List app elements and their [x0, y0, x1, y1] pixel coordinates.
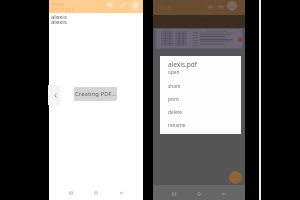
button[interactable]: Edit — [118, 1, 126, 9]
staticText: alexis — [51, 18, 67, 26]
button[interactable]: Previous page — [48, 85, 60, 105]
button[interactable]: Add — [229, 171, 242, 184]
staticText: alexis.pdf — [51, 6, 74, 13]
staticText: Creating PDF... — [75, 90, 117, 98]
button[interactable]: Recents — [67, 189, 75, 197]
staticText: share — [168, 83, 181, 90]
staticText: open — [168, 69, 180, 76]
button[interactable]: Share — [205, 2, 214, 11]
button[interactable]: Recents — [170, 190, 178, 198]
button[interactable]: Home — [92, 189, 100, 197]
button[interactable]: Home — [195, 190, 203, 198]
staticText: rename — [168, 122, 186, 129]
button[interactable]: rename — [160, 119, 241, 131]
button[interactable]: Account — [227, 1, 237, 11]
staticText: alexis — [51, 13, 67, 21]
button[interactable]: Edit — [216, 2, 225, 11]
button[interactable]: Account — [131, 1, 140, 10]
button[interactable]: Print — [105, 1, 113, 9]
button[interactable]: print — [160, 93, 241, 105]
button[interactable]: Back — [220, 190, 228, 198]
staticText: print — [168, 96, 179, 103]
button[interactable]: Back — [118, 189, 126, 197]
button[interactable]: delete — [160, 106, 241, 118]
button[interactable]: share — [160, 80, 241, 92]
staticText: alexis.pdf — [168, 60, 198, 69]
button[interactable]: open — [160, 66, 241, 78]
staticText: alexis — [51, 1, 65, 8]
staticText: delete — [168, 109, 183, 116]
